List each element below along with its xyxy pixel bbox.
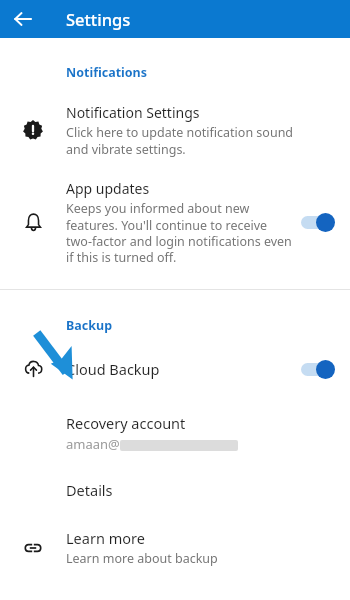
button[interactable]: Notification Settings (0, 103, 350, 157)
staticText: Recovery account (66, 413, 186, 433)
staticText: Backup (66, 317, 113, 334)
staticText: Details (66, 480, 113, 500)
staticText: Learn more about backup (66, 550, 218, 567)
staticText: Notification Settings (66, 103, 200, 122)
staticText: Notifications (66, 64, 148, 81)
staticText: Keeps you informed about new features. Y… (66, 200, 293, 265)
staticText: amaan@ (66, 435, 120, 453)
button[interactable]: Toggle (301, 212, 337, 232)
button[interactable]: Learn more (0, 528, 350, 567)
staticText: App updates (66, 179, 150, 198)
staticText: Learn more (66, 528, 145, 548)
button[interactable]: Recovery account (0, 413, 350, 453)
button[interactable]: Toggle (301, 359, 337, 379)
button[interactable]: Details (0, 480, 350, 500)
button[interactable]: Back (8, 4, 38, 34)
staticText: Click here to update notification sound … (66, 124, 314, 157)
button[interactable]: App updates (0, 179, 350, 265)
staticText: Cloud Backup (66, 359, 160, 379)
button[interactable]: Cloud Backup (0, 358, 350, 379)
staticText: Settings (66, 8, 131, 30)
